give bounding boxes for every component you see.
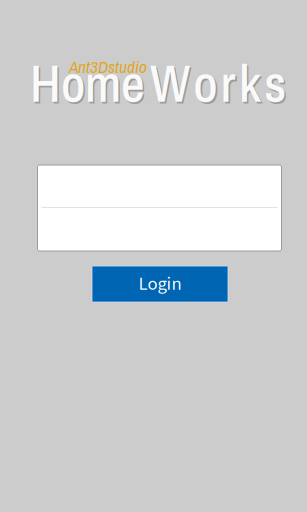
button[interactable]: Login [92,266,228,302]
staticText: Home [30,48,145,118]
staticText: Login [138,271,181,297]
staticText: Home [32,50,147,120]
staticText: Works [150,48,286,118]
staticText: Ant3Dstudio [69,55,147,78]
staticText: Works [152,50,288,120]
